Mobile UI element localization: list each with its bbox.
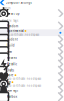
button[interactable]: New: [0, 49, 64, 55]
staticText: To Set Up: [7, 12, 20, 15]
staticText: Computer Settings: [6, 1, 32, 4]
button[interactable]: Drafts: [0, 67, 64, 73]
staticText: an.certificate.needspace: [7, 33, 40, 36]
staticText: also certificate needspace: [7, 77, 42, 80]
button[interactable]: Metallic: [0, 61, 64, 67]
button[interactable]: Experimental: [0, 29, 64, 36]
button[interactable]: To Set Up: [0, 11, 64, 17]
staticText: New: [7, 50, 12, 53]
staticText: also certificate needspace: [7, 84, 42, 87]
staticText: Experimental: [7, 29, 24, 33]
button[interactable]: Mailbox: [0, 94, 64, 100]
button[interactable]: New Tags: [0, 87, 64, 94]
staticText: More: [7, 73, 14, 77]
button[interactable]: Random: [0, 23, 64, 29]
staticText: Metallic: [7, 62, 17, 66]
button[interactable]: Recent: [0, 55, 64, 61]
staticText: Last: [7, 80, 11, 84]
button[interactable]: Last: [0, 80, 64, 87]
staticText: New Tags: [7, 89, 18, 92]
staticText: Recent: [7, 56, 17, 60]
staticText: Random: [7, 24, 18, 28]
staticText: Profile Tags: [2, 19, 18, 22]
button[interactable]: Student: [0, 36, 64, 42]
staticText: System: [2, 6, 10, 10]
button[interactable]: More: [0, 73, 64, 80]
staticText: Build: [7, 44, 15, 47]
button[interactable]: Build: [0, 42, 64, 49]
staticText: Drafts: [7, 69, 14, 72]
staticText: Student: [7, 38, 18, 41]
button[interactable]: Back: [1, 1, 5, 4]
staticText: Mailbox: [7, 95, 17, 98]
